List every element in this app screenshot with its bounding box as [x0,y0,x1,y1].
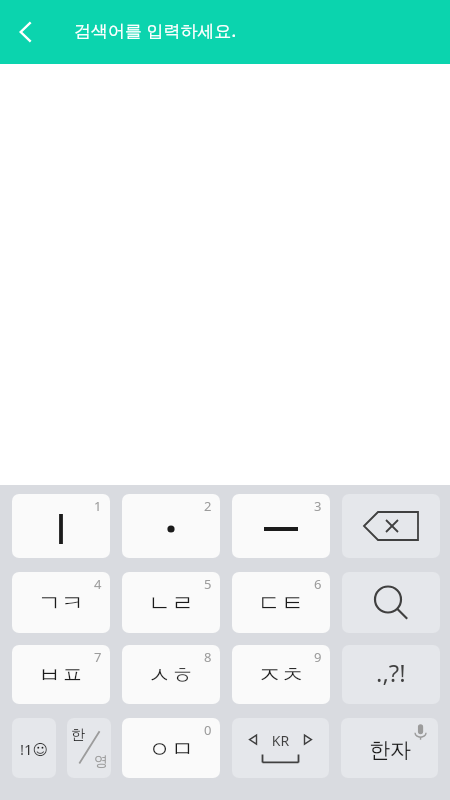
staticText: 한 [71,726,85,744]
button[interactable]: ㅡ [232,494,330,558]
button[interactable]: Search [342,572,440,633]
button[interactable]: ㅈㅊ [232,645,330,704]
button[interactable]: Back [7,13,45,51]
staticText: ㅈㅊ [258,661,304,690]
staticText: 한자 [369,737,411,763]
button[interactable]: ㅇㅁ [122,718,220,778]
button[interactable]: ㄷㅌ [232,572,330,633]
button[interactable]: ㅅㅎ [122,645,220,704]
button[interactable]: Backspace [342,494,440,558]
staticText: ㅇㅁ [148,735,194,764]
staticText: 9 [314,648,322,666]
staticText: 검색어를 입력하세요. [74,19,237,42]
staticText: KR [232,731,329,778]
button[interactable]: ㆍ [122,494,220,558]
staticText: .,?! [376,656,406,689]
staticText: 0 [204,721,212,739]
staticText: !1☺ [20,739,49,759]
button[interactable]: ㄱㅋ [12,572,110,633]
button[interactable]: Space [232,718,329,778]
staticText: ㅅㅎ [148,661,194,690]
button[interactable]: Punctuation [342,645,440,704]
staticText: 6 [314,575,322,593]
staticText: 4 [94,575,102,593]
staticText: 8 [204,648,212,666]
staticText: 1 [94,497,102,515]
button[interactable]: 한자 [341,718,438,778]
button[interactable]: ㄴㄹ [122,572,220,633]
staticText: 2 [204,497,212,515]
staticText: ㅂㅍ [38,661,84,690]
button[interactable]: ㅂㅍ [12,645,110,704]
staticText: ㄴㄹ [148,589,194,618]
staticText: 영 [94,753,108,771]
button[interactable]: Korean English [67,718,111,778]
button[interactable]: Symbols [12,718,56,778]
staticText: 5 [204,575,212,593]
staticText: 3 [314,497,322,515]
button[interactable]: ㅣ [12,494,110,558]
staticText: ㄱㅋ [38,589,84,618]
staticText: ㄷㅌ [258,589,304,618]
staticText: 7 [94,648,102,666]
